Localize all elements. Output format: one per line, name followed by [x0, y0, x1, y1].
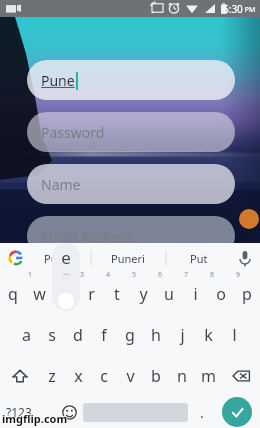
button[interactable]: g [117, 314, 143, 355]
button[interactable]: f [91, 314, 117, 355]
staticText: e [60, 283, 70, 305]
button[interactable]: u [156, 273, 182, 314]
staticText: Email Address [41, 227, 134, 246]
staticText: d [73, 324, 83, 346]
staticText: b [151, 365, 161, 387]
button[interactable]: Email Address [27, 216, 235, 256]
staticText: 9 [236, 270, 241, 280]
button[interactable]: t [104, 273, 130, 314]
staticText: Name [41, 175, 81, 194]
button[interactable]: m [195, 355, 221, 396]
staticText: imgflip.com [1, 410, 67, 425]
button[interactable]: o [208, 273, 234, 314]
staticText: t [114, 283, 120, 305]
button[interactable]: Emoji [58, 396, 81, 428]
button[interactable]: w [26, 273, 52, 314]
button[interactable]: l [221, 314, 247, 355]
button[interactable]: Password [27, 112, 235, 152]
button[interactable]: Name [27, 164, 235, 204]
button[interactable]: j [169, 314, 195, 355]
staticText: v [126, 365, 135, 387]
staticText: j [180, 324, 185, 346]
staticText: n [177, 365, 187, 387]
staticText: 6 [158, 270, 163, 280]
button[interactable]: y [130, 273, 156, 314]
button[interactable]: d [65, 314, 91, 355]
staticText: o [216, 283, 226, 305]
staticText: m [201, 365, 216, 387]
button[interactable]: c [91, 355, 117, 396]
button[interactable]: i [182, 273, 208, 314]
staticText: f [101, 324, 107, 346]
staticText: imgflip.com [2, 411, 68, 426]
staticText: Puneri [111, 251, 145, 266]
button[interactable]: a [13, 314, 39, 355]
button[interactable]: Backspace [221, 355, 260, 396]
staticText: Pune? [44, 251, 76, 266]
staticText: e [61, 246, 71, 269]
button[interactable]: Pune [27, 60, 235, 100]
button[interactable]: v [117, 355, 143, 396]
staticText: imgflip.com [3, 412, 69, 427]
staticText: y [139, 283, 148, 305]
button[interactable]: z [39, 355, 65, 396]
button[interactable]: ?123 [0, 396, 37, 428]
staticText: h [151, 324, 161, 346]
staticText: p [242, 283, 252, 305]
button[interactable]: e [52, 273, 78, 314]
button[interactable]: . [190, 396, 213, 428]
staticText: l [232, 324, 237, 346]
button[interactable]: p [234, 273, 260, 314]
button[interactable]: h [143, 314, 169, 355]
staticText: s [48, 324, 56, 346]
staticText: Put [190, 251, 208, 266]
staticText: r [88, 283, 95, 305]
staticText: z [48, 365, 56, 387]
staticText: 3 [80, 270, 85, 280]
staticText: 4 [106, 270, 111, 280]
staticText: 6:30 [223, 2, 243, 16]
staticText: , [46, 403, 50, 422]
staticText: w [33, 283, 46, 305]
staticText: 5 [132, 270, 137, 280]
button[interactable]: Shift [0, 355, 39, 396]
staticText: q [8, 283, 18, 305]
staticText: a [22, 324, 31, 346]
button[interactable]: , [37, 396, 58, 428]
button[interactable]: b [143, 355, 169, 396]
button[interactable]: r [78, 273, 104, 314]
button[interactable]: Done [222, 397, 252, 427]
staticText: x [74, 365, 83, 387]
staticText: 1 [28, 270, 33, 280]
button[interactable]: k [195, 314, 221, 355]
button[interactable]: n [169, 355, 195, 396]
staticText: 8 [210, 270, 215, 280]
staticText: c [100, 365, 108, 387]
staticText: i [193, 283, 198, 305]
button[interactable]: s [39, 314, 65, 355]
staticText: ?123 [6, 404, 32, 420]
button[interactable]: Submit [239, 209, 259, 229]
staticText: 7 [184, 270, 189, 280]
staticText: Password [41, 123, 105, 142]
staticText: … [63, 266, 70, 277]
staticText: g [125, 324, 135, 346]
staticText: Pune [41, 71, 75, 90]
button[interactable]: x [65, 355, 91, 396]
staticText: . [200, 403, 204, 422]
staticText: PM [243, 5, 256, 15]
button[interactable]: q [0, 273, 26, 314]
staticText: k [204, 324, 213, 346]
staticText: u [164, 283, 174, 305]
